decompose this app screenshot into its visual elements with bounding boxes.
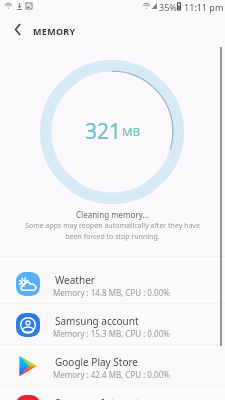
- staticText: 35%: [159, 1, 177, 13]
- staticText: Google Play Store: [55, 355, 139, 369]
- button[interactable]: Back: [5, 17, 29, 41]
- staticText: 321: [85, 117, 122, 146]
- staticText: 11:11 pm: [184, 1, 224, 13]
- staticText: Some apps may reopen automatically after…: [0, 221, 225, 231]
- button[interactable]: Samsung account: [0, 304, 225, 345]
- button[interactable]: Weather: [0, 263, 225, 304]
- staticText: Memory : 14.8 MB, CPU : 0.00%: [53, 287, 170, 298]
- staticText: been forced to stop running.: [0, 232, 225, 242]
- staticText: MEMORY: [33, 25, 76, 37]
- button[interactable]: Google Play Store: [0, 345, 225, 386]
- staticText: MB: [122, 124, 141, 140]
- staticText: Weather: [55, 273, 95, 287]
- staticText: Cleaning memory...: [0, 209, 225, 220]
- staticText: Samsung account: [55, 314, 139, 328]
- button[interactable]: Samsung Internet: [0, 386, 225, 400]
- staticText: Samsung Internet: [55, 396, 140, 400]
- staticText: Memory : 42.4 MB, CPU : 0.00%: [53, 369, 170, 380]
- staticText: Memory : 15.3 MB, CPU : 0.00%: [53, 328, 170, 339]
